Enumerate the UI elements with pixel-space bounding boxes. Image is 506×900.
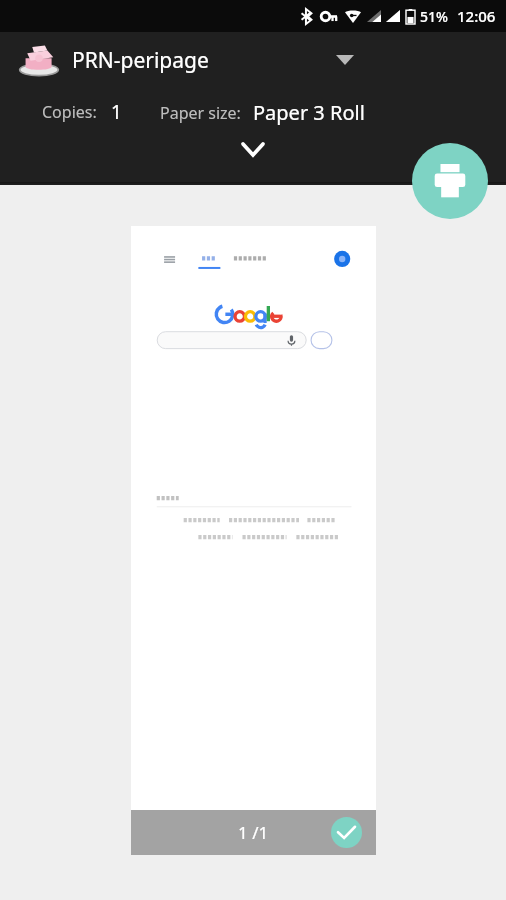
staticText: Paper 3 Roll bbox=[253, 99, 365, 126]
staticText: Copies: bbox=[42, 101, 97, 123]
button[interactable]: Page selected bbox=[331, 817, 362, 848]
staticText: Paper size: bbox=[160, 102, 241, 124]
staticText: PRN-peripage bbox=[72, 46, 209, 75]
staticText: 51% bbox=[420, 7, 448, 26]
button[interactable]: Expand options bbox=[223, 132, 283, 166]
button[interactable]: PRN-peripage bbox=[0, 32, 506, 88]
button[interactable]: 1 /1 bbox=[131, 226, 376, 855]
staticText: 1 /1 bbox=[238, 821, 269, 844]
button[interactable]: Paper size: bbox=[160, 99, 365, 126]
button[interactable]: Copies: bbox=[42, 99, 122, 125]
staticText: 12:06 bbox=[457, 6, 496, 26]
staticText: 1 bbox=[111, 99, 122, 125]
button[interactable]: Print bbox=[412, 143, 488, 219]
